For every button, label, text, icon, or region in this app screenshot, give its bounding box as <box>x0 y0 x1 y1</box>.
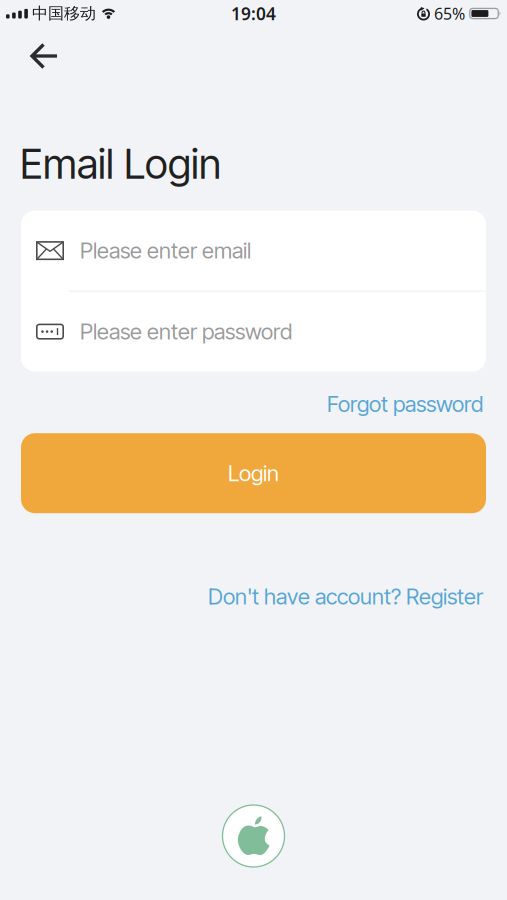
staticText: Forgot password <box>327 391 483 417</box>
button[interactable]: Forgot password <box>327 391 483 417</box>
button[interactable]: Back <box>0 27 58 69</box>
staticText: Please enter password <box>80 318 292 345</box>
staticText: Email Login <box>20 139 221 189</box>
staticText: 65% <box>434 3 465 24</box>
button[interactable]: Don't have account? Register <box>208 583 483 610</box>
staticText: Don't have account? Register <box>208 583 483 610</box>
staticText: Login <box>228 460 279 486</box>
button[interactable]: Sign in with Apple <box>222 805 284 867</box>
staticText: 中国移动 <box>32 4 96 23</box>
staticText: 19:04 <box>231 2 276 25</box>
staticText: Please enter email <box>80 237 251 264</box>
button[interactable]: Login <box>0 433 507 513</box>
